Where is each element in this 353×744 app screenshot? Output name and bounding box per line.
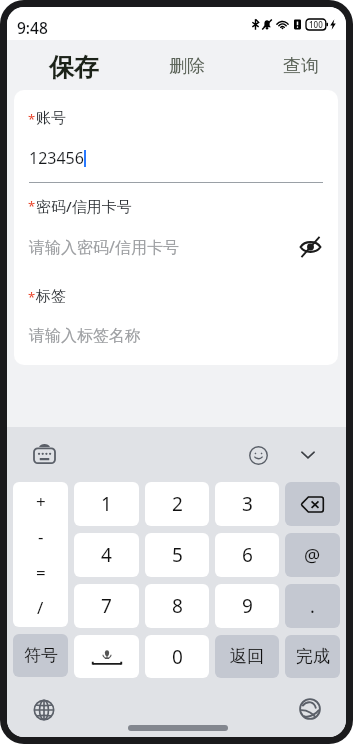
staticText: 请输入标签名称 [29,326,141,346]
staticText: 0 [172,644,183,670]
staticText: 账号 [36,109,66,128]
button[interactable]: 查询 [273,48,346,85]
staticText: 9 [242,593,253,619]
button[interactable]: Show password [296,233,324,261]
button[interactable]: Settings [293,692,327,726]
staticText: = [36,561,46,584]
staticText: / [37,596,44,619]
staticText: . [310,594,315,619]
button[interactable]: 3 [215,482,279,526]
button[interactable]: Hide keyboard [292,439,324,471]
button[interactable]: Language [27,693,61,727]
staticText: @ [304,543,321,568]
button[interactable]: 7 [74,584,139,628]
staticText: 123456 [29,147,84,169]
button[interactable] [74,635,139,678]
staticText: * [28,197,36,215]
button[interactable]: 9 [215,584,279,628]
button[interactable]: 返回 [215,635,279,678]
button[interactable]: 符号 [13,634,68,677]
button[interactable]: 保存 [7,45,113,90]
button[interactable]: 6 [215,533,279,577]
staticText: 7 [101,593,112,619]
staticText: + [36,490,46,513]
button[interactable]: 删除 [159,48,215,85]
staticText: 8 [172,593,183,619]
button[interactable]: + [13,482,68,627]
staticText: 密码/信用卡号 [36,196,132,216]
staticText: * [28,288,36,306]
button[interactable]: Emoji [242,439,274,471]
button[interactable]: . [285,584,340,628]
staticText: 9:48 [17,17,48,38]
button[interactable]: 2 [145,482,209,526]
staticText: 符号 [24,645,58,666]
staticText: 4 [101,542,112,568]
staticText: 3 [242,491,253,517]
button[interactable]: 8 [145,584,209,628]
staticText: 6 [242,542,253,568]
staticText: 100 [309,19,323,30]
staticText: 5 [172,542,183,568]
button[interactable]: Input method [26,437,62,473]
staticText: 删除 [169,55,205,78]
button[interactable] [285,482,340,526]
button[interactable]: 0 [145,635,209,678]
staticText: 请输入密码/信用卡号 [29,236,179,258]
staticText: * [28,110,36,128]
button[interactable]: 4 [74,533,139,577]
button[interactable]: @ [285,533,340,577]
staticText: 保存 [49,52,99,83]
staticText: 1 [101,491,112,517]
staticText: 2 [172,491,183,517]
staticText: 完成 [296,646,330,667]
button[interactable]: 1 [74,482,139,526]
button[interactable]: 完成 [285,635,340,678]
staticText: 返回 [230,646,264,667]
staticText: 查询 [283,55,319,78]
staticText: - [38,525,44,548]
button[interactable]: 5 [145,533,209,577]
staticText: 标签 [36,287,66,306]
